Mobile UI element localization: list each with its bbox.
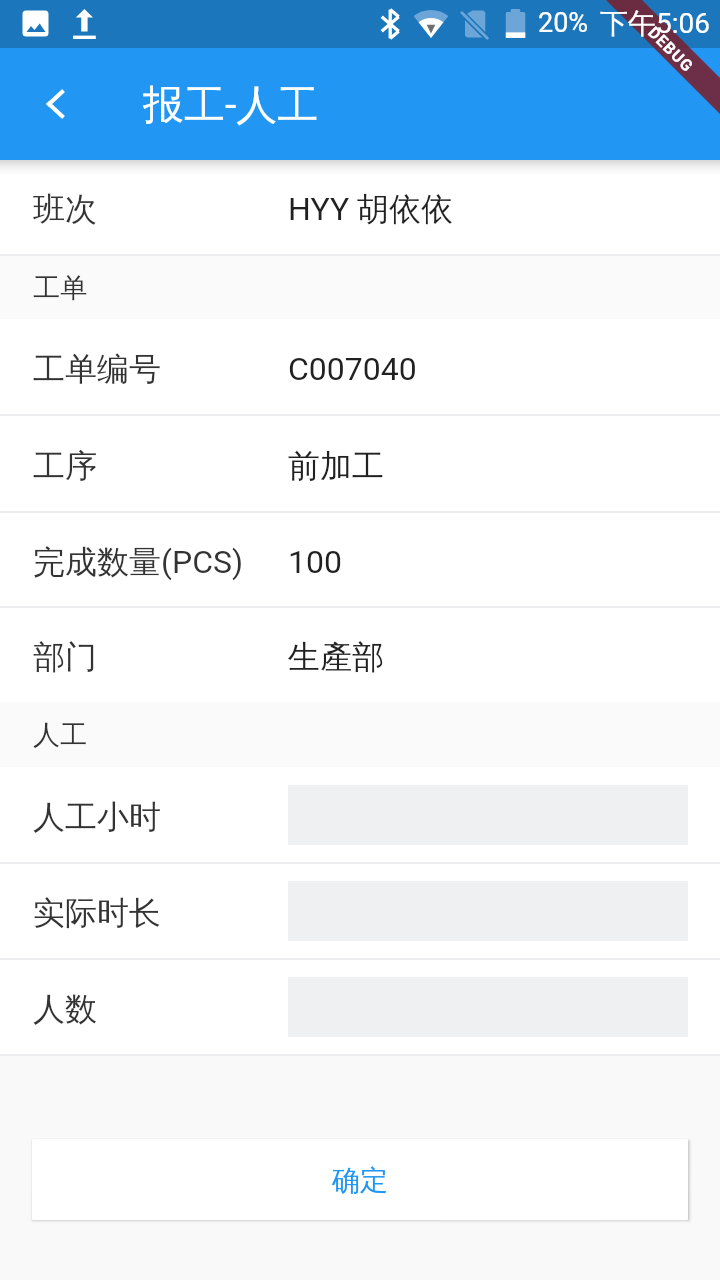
staticText: HYY 胡依依 <box>288 189 454 229</box>
staticText: 人数 <box>33 989 288 1029</box>
staticText: C007040 <box>288 350 417 388</box>
staticText: 班次 <box>33 189 288 229</box>
staticText: 工序 <box>33 446 288 486</box>
button[interactable]: 实际时长 <box>0 864 720 958</box>
staticText: 工单编号 <box>33 349 288 389</box>
staticText: 确定 <box>332 1163 388 1198</box>
button[interactable]: 人工小时 <box>0 767 720 862</box>
button[interactable]: 工序 <box>0 416 720 511</box>
button[interactable]: 完成数量(PCS) <box>0 513 720 606</box>
staticText: 人工小时 <box>33 797 288 837</box>
staticText: 实际时长 <box>33 893 288 933</box>
button[interactable]: 人数 <box>0 960 720 1054</box>
staticText: 人工 <box>33 718 87 752</box>
staticText: 部门 <box>33 637 288 677</box>
staticText: 20% <box>538 7 589 39</box>
staticText: 完成数量(PCS) <box>33 542 288 582</box>
staticText: 下午5:06 <box>600 6 710 41</box>
staticText: DEBUG <box>644 23 698 76</box>
staticText: 工单 <box>33 271 87 305</box>
button[interactable]: Back <box>27 76 83 132</box>
button[interactable]: 工单编号 <box>0 319 720 414</box>
staticText: 报工-人工 <box>143 80 319 132</box>
button[interactable]: 确定 <box>32 1139 688 1220</box>
staticText: 生產部 <box>288 637 384 677</box>
button[interactable]: 班次 <box>0 160 720 254</box>
staticText: 前加工 <box>288 446 384 486</box>
staticText: 100 <box>288 543 342 581</box>
button[interactable]: 部门 <box>0 608 720 702</box>
